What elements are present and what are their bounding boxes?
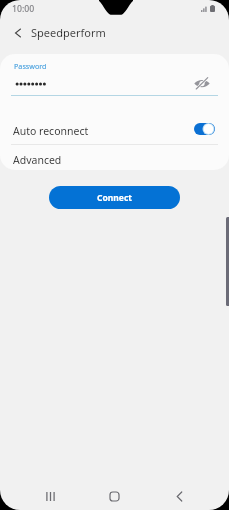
button[interactable]: Recent apps [34,482,67,510]
button[interactable]: Home [98,482,131,510]
button[interactable]: Advanced [0,147,229,170]
staticText: Password [14,61,47,71]
button[interactable]: Connect [49,186,180,209]
button[interactable]: Auto reconnect [0,117,229,144]
staticText: Advanced [13,153,62,167]
staticText: Auto reconnect [13,124,89,138]
staticText: Connect [97,192,132,204]
staticText: Speedperform [31,25,106,40]
button[interactable]: Back [163,482,196,510]
button[interactable]: Show password [190,71,214,95]
staticText: 10:00 [12,3,35,15]
button[interactable]: Navigate up [8,23,28,43]
button[interactable]: Auto reconnect [194,123,215,135]
